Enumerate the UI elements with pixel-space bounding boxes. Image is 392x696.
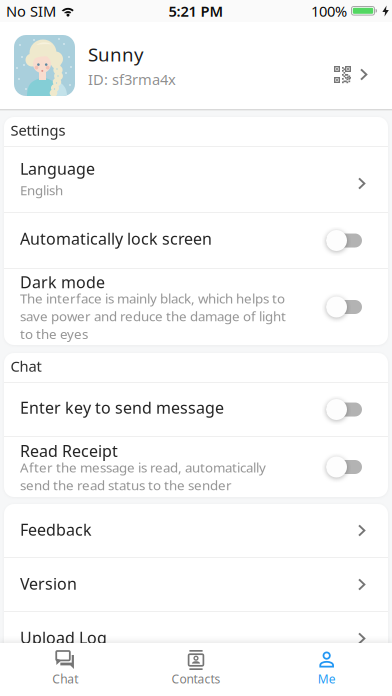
staticText: to the eyes xyxy=(20,325,88,343)
staticText: The interface is mainly black, which hel… xyxy=(20,290,285,307)
staticText: English xyxy=(20,181,63,199)
staticText: Chat xyxy=(10,356,41,376)
staticText: save power and reduce the damage of ligh… xyxy=(20,307,286,325)
staticText: Settings xyxy=(10,120,65,140)
button[interactable]: Read Receipt xyxy=(4,437,388,497)
button[interactable]: Upload Log xyxy=(4,612,388,665)
button[interactable]: Automatically lock screen xyxy=(4,213,388,268)
button[interactable]: Language xyxy=(4,147,388,212)
staticText: Contacts xyxy=(171,671,220,687)
staticText: 5:21 PM xyxy=(168,1,223,21)
staticText: After the message is read, automatically xyxy=(20,458,266,476)
staticText: Chat xyxy=(52,671,78,687)
button[interactable]: Enter key to send message xyxy=(4,383,388,436)
staticText: Language xyxy=(20,158,95,179)
staticText: Version xyxy=(20,573,77,594)
button[interactable]: Version xyxy=(4,558,388,611)
button[interactable]: Feedback xyxy=(4,504,388,557)
staticText: Feedback xyxy=(20,519,92,540)
staticText: send the read status to the sender xyxy=(20,476,232,494)
button[interactable]: Chat xyxy=(0,643,131,696)
staticText: Upload Log xyxy=(20,627,107,648)
staticText: Read Receipt xyxy=(20,440,118,461)
staticText: Me xyxy=(318,671,336,687)
staticText: Automatically lock screen xyxy=(20,228,212,249)
staticText: Dark mode xyxy=(20,271,105,292)
button[interactable]: Me xyxy=(261,643,392,696)
staticText: 100% xyxy=(311,1,347,21)
staticText: ID: sf3rma4x xyxy=(88,70,176,89)
button[interactable]: Contacts xyxy=(131,643,261,696)
button[interactable]: Sunny xyxy=(0,22,392,109)
staticText: Sunny xyxy=(88,42,144,67)
button[interactable]: Dark mode xyxy=(4,269,388,345)
staticText: No SIM xyxy=(6,1,56,21)
staticText: Enter key to send message xyxy=(20,397,224,418)
